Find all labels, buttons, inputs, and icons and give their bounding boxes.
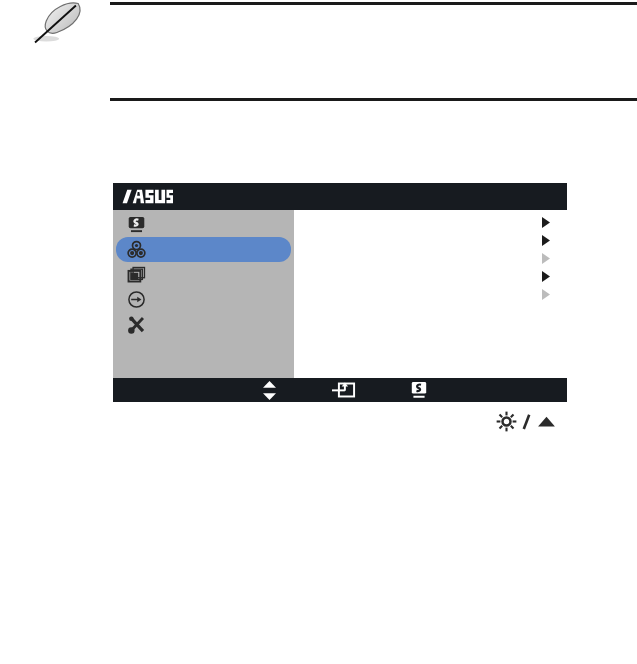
button[interactable] xyxy=(294,249,567,267)
button[interactable] xyxy=(116,312,291,337)
button[interactable] xyxy=(294,213,567,231)
button[interactable] xyxy=(294,267,567,285)
button[interactable] xyxy=(294,285,567,303)
button[interactable]: Brightness up xyxy=(496,409,557,433)
button[interactable] xyxy=(294,231,567,249)
button[interactable] xyxy=(116,212,291,237)
button[interactable] xyxy=(116,237,291,262)
button[interactable]: Input Select xyxy=(332,381,355,399)
button[interactable] xyxy=(116,287,291,312)
button[interactable]: Splendid mode xyxy=(410,381,428,399)
button[interactable]: Navigate up or down xyxy=(263,381,276,400)
button[interactable] xyxy=(116,262,291,287)
